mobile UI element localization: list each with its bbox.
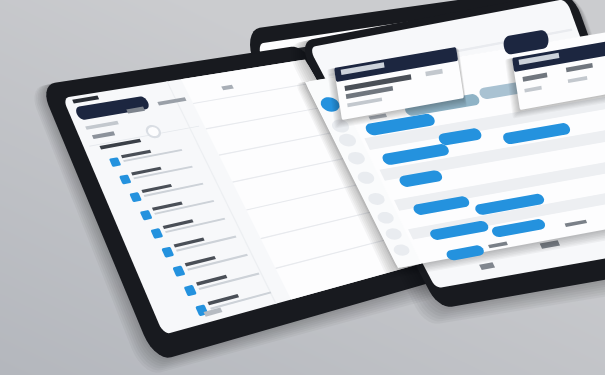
button[interactable]: Filter bbox=[498, 0, 562, 38]
button[interactable]: Messages panel bbox=[305, 0, 605, 213]
button[interactable]: Summary card bbox=[512, 16, 605, 88]
button[interactable]: Left tablet screen bbox=[40, 0, 485, 358]
button[interactable]: Details card bbox=[334, 26, 465, 98]
button[interactable]: Right tablet screen bbox=[297, 0, 605, 314]
